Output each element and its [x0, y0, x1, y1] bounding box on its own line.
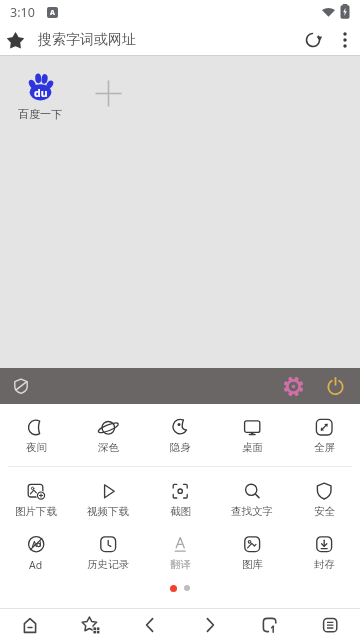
- button[interactable]: 图库: [216, 532, 288, 571]
- staticText: 图库: [242, 558, 263, 571]
- button[interactable]: 桌面: [216, 415, 288, 454]
- button[interactable]: [180, 609, 240, 640]
- staticText: 历史记录: [87, 558, 129, 571]
- staticText: 封存: [314, 558, 335, 571]
- button[interactable]: 历史记录: [72, 532, 144, 571]
- button[interactable]: [0, 609, 60, 640]
- button[interactable]: [60, 609, 120, 640]
- staticText: du: [34, 86, 48, 100]
- button[interactable]: [300, 609, 360, 640]
- button[interactable]: 全屏: [288, 415, 360, 454]
- button[interactable]: du: [16, 71, 64, 121]
- staticText: 查找文字: [231, 505, 273, 518]
- button[interactable]: 搜索字词或网址: [38, 31, 296, 49]
- button[interactable]: 深色: [72, 415, 144, 454]
- button[interactable]: 封存: [288, 532, 360, 571]
- button[interactable]: 夜间: [0, 415, 72, 454]
- button[interactable]: Ad: [0, 532, 72, 572]
- staticText: Ad: [29, 558, 43, 572]
- staticText: 深色: [98, 441, 119, 454]
- staticText: 安全: [314, 505, 335, 518]
- button[interactable]: [6, 371, 36, 401]
- staticText: 视频下载: [87, 505, 129, 518]
- button[interactable]: [296, 24, 330, 55]
- button[interactable]: 图片下载: [0, 479, 72, 518]
- button[interactable]: [82, 67, 134, 119]
- staticText: 夜间: [26, 441, 47, 454]
- button[interactable]: 视频下载: [72, 479, 144, 518]
- button[interactable]: 隐身: [144, 415, 216, 454]
- staticText: 全屏: [314, 441, 335, 454]
- button[interactable]: [120, 609, 180, 640]
- staticText: 3:10: [10, 4, 35, 21]
- button[interactable]: [318, 369, 352, 403]
- staticText: 截图: [170, 505, 191, 518]
- staticText: 桌面: [242, 441, 263, 454]
- staticText: 翻译: [170, 558, 191, 571]
- staticText: 隐身: [170, 441, 191, 454]
- button[interactable]: 安全: [288, 479, 360, 518]
- staticText: A: [50, 8, 55, 18]
- button[interactable]: 翻译: [144, 532, 216, 571]
- button[interactable]: 截图: [144, 479, 216, 518]
- button[interactable]: [276, 369, 310, 403]
- button[interactable]: [240, 609, 300, 640]
- staticText: 图片下载: [15, 505, 57, 518]
- button[interactable]: [330, 25, 360, 55]
- staticText: 百度一下: [18, 107, 62, 121]
- button[interactable]: 查找文字: [216, 479, 288, 518]
- button[interactable]: [0, 25, 30, 55]
